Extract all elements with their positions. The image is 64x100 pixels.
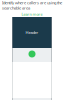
staticText: Identify where callers are using the sea… bbox=[2, 0, 62, 11]
staticText: Header bbox=[25, 30, 38, 35]
staticText: Learn more bbox=[21, 12, 42, 17]
